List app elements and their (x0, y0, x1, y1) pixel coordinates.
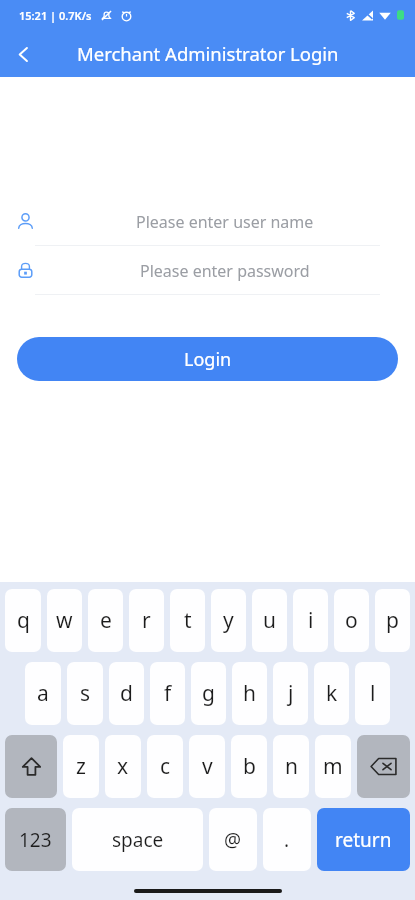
button[interactable]: p (375, 589, 410, 652)
button[interactable]: Please enter user name (0, 198, 415, 245)
button[interactable]: g (191, 662, 226, 725)
staticText: h (243, 679, 256, 708)
button[interactable]: j (273, 662, 308, 725)
staticText: o (345, 606, 358, 635)
staticText: x (117, 752, 129, 781)
staticText: e (100, 606, 112, 635)
staticText: 15:21 | 0.7K/s (19, 8, 92, 23)
button[interactable]: Back (0, 31, 46, 77)
button[interactable]: return (317, 808, 410, 871)
staticText: v (202, 752, 213, 781)
staticText: l (370, 679, 376, 708)
button[interactable]: space (72, 808, 203, 871)
staticText: u (263, 606, 276, 635)
staticText: g (202, 679, 215, 708)
staticText: y (223, 606, 234, 635)
button[interactable]: Backspace (357, 735, 410, 798)
staticText: i (308, 606, 314, 635)
staticText: 123 (19, 827, 52, 853)
staticText: j (288, 679, 294, 708)
staticText: w (56, 606, 73, 635)
button[interactable]: u (252, 589, 287, 652)
button[interactable]: a (25, 662, 61, 725)
staticText: return (335, 827, 392, 853)
button[interactable]: 123 (5, 808, 66, 871)
staticText: c (160, 752, 171, 781)
staticText: m (323, 752, 343, 781)
staticText: Please enter user name (136, 211, 314, 233)
staticText: p (386, 606, 399, 635)
button[interactable]: Please enter password (0, 247, 415, 294)
button[interactable]: d (109, 662, 144, 725)
button[interactable]: v (189, 735, 225, 798)
staticText: r (142, 606, 151, 635)
staticText: k (326, 679, 338, 708)
button[interactable]: z (63, 735, 99, 798)
staticText: f (164, 679, 172, 708)
staticText: . (284, 827, 290, 853)
button[interactable]: k (314, 662, 349, 725)
staticText: Merchant Administrator Login (77, 41, 339, 66)
button[interactable]: r (129, 589, 164, 652)
button[interactable]: e (88, 589, 123, 652)
button[interactable]: x (105, 735, 141, 798)
button[interactable]: l (355, 662, 390, 725)
staticText: t (184, 606, 192, 635)
staticText: s (80, 679, 91, 708)
button[interactable]: o (334, 589, 369, 652)
button[interactable]: q (5, 589, 41, 652)
staticText: Please enter password (140, 260, 310, 282)
button[interactable]: @ (209, 808, 257, 871)
button[interactable]: b (231, 735, 267, 798)
staticText: n (285, 752, 298, 781)
staticText: @ (224, 827, 242, 853)
staticText: space (112, 827, 164, 853)
button[interactable]: . (263, 808, 311, 871)
button[interactable]: f (150, 662, 185, 725)
button[interactable]: h (232, 662, 267, 725)
button[interactable]: y (211, 589, 246, 652)
button[interactable]: w (47, 589, 82, 652)
staticText: b (243, 752, 256, 781)
staticText: d (120, 679, 133, 708)
button[interactable]: Login (17, 337, 398, 381)
button[interactable]: m (315, 735, 351, 798)
button[interactable]: s (67, 662, 103, 725)
button[interactable]: c (147, 735, 183, 798)
button[interactable]: n (273, 735, 309, 798)
staticText: q (17, 606, 30, 635)
button[interactable]: i (293, 589, 328, 652)
button[interactable]: t (170, 589, 205, 652)
button[interactable]: Shift (5, 735, 57, 798)
staticText: z (76, 752, 86, 781)
staticText: Login (184, 347, 232, 372)
staticText: a (37, 679, 49, 708)
